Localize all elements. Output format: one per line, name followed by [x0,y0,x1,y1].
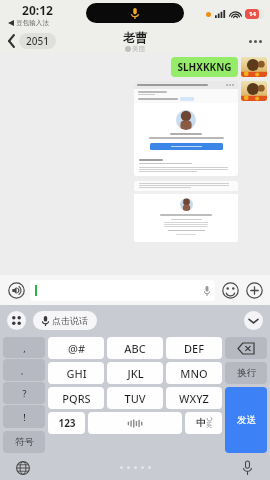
button[interactable] [30,280,215,301]
staticText: ABC [124,341,146,356]
button[interactable]: PQRS [48,387,104,409]
button[interactable]: Back to 2051 [6,31,58,51]
button[interactable]: DEF [166,337,222,359]
staticText: 豆包输入法 [16,19,49,27]
button[interactable]: ! [3,405,45,428]
button[interactable]: 123 [48,412,85,434]
button[interactable]: 换行 [225,362,267,384]
button[interactable]: 点击说话 [33,311,97,330]
staticText: 2051 [26,34,49,48]
staticText: @# [68,341,85,356]
staticText: GHI [66,366,87,381]
staticText: 点击说话 [52,315,88,326]
button[interactable]: SLHXKKNG [171,57,238,77]
button[interactable]: Keyboard apps [7,311,26,330]
button[interactable]: 符号 [3,431,45,453]
staticText: 符号 [15,436,34,448]
staticText: 换行 [237,367,256,379]
staticText: , [23,342,26,354]
staticText: MNO [180,366,208,381]
button[interactable]: Voice dictation [238,459,256,477]
staticText: 老曹 [123,30,147,45]
button[interactable]: Switch language [14,459,32,477]
button[interactable]: WXYZ [166,387,222,409]
button[interactable]: Image message [134,81,238,176]
button[interactable]: ABC [107,337,163,359]
button[interactable]: Emoji [219,279,241,301]
staticText: SLHXKKNG [177,60,232,74]
staticText: PQRS [62,391,91,406]
button[interactable]: Backspace [225,337,267,359]
button[interactable]: Image message [134,181,238,242]
button[interactable]: GHI [48,362,104,384]
staticText: 发送 [237,414,256,426]
staticText: 。 [20,365,29,376]
button[interactable]: , [3,337,45,358]
button[interactable]: 。 [3,359,45,381]
button[interactable]: Contact avatar [241,81,267,101]
staticText: 中 [196,417,206,429]
button[interactable]: TUV [107,387,163,409]
button[interactable]: Voice input [5,279,27,301]
button[interactable]: Hide keyboard [244,311,263,330]
staticText: DEF [184,341,204,356]
button[interactable]: MNO [166,362,222,384]
staticText: WXYZ [179,391,209,406]
button[interactable]: 发送 [225,387,267,453]
staticText: 123 [58,416,76,430]
button[interactable]: More options [241,34,270,49]
staticText: ? [22,387,27,399]
button[interactable]: @# [48,337,104,359]
button[interactable]: Contact avatar [241,57,267,77]
staticText: JKL [127,366,144,381]
staticText: ! [23,411,26,423]
button[interactable]: JKL [107,362,163,384]
staticText: 英 [206,421,212,429]
staticText: 20:12 [22,2,53,18]
button[interactable]: More functions [243,279,265,301]
staticText: 美团 [132,45,145,53]
button[interactable]: Space [88,412,182,434]
button[interactable]: ? [3,382,45,404]
staticText: 14 [249,10,256,18]
staticText: TUV [124,391,146,406]
button[interactable]: Chinese English toggle [185,412,222,434]
